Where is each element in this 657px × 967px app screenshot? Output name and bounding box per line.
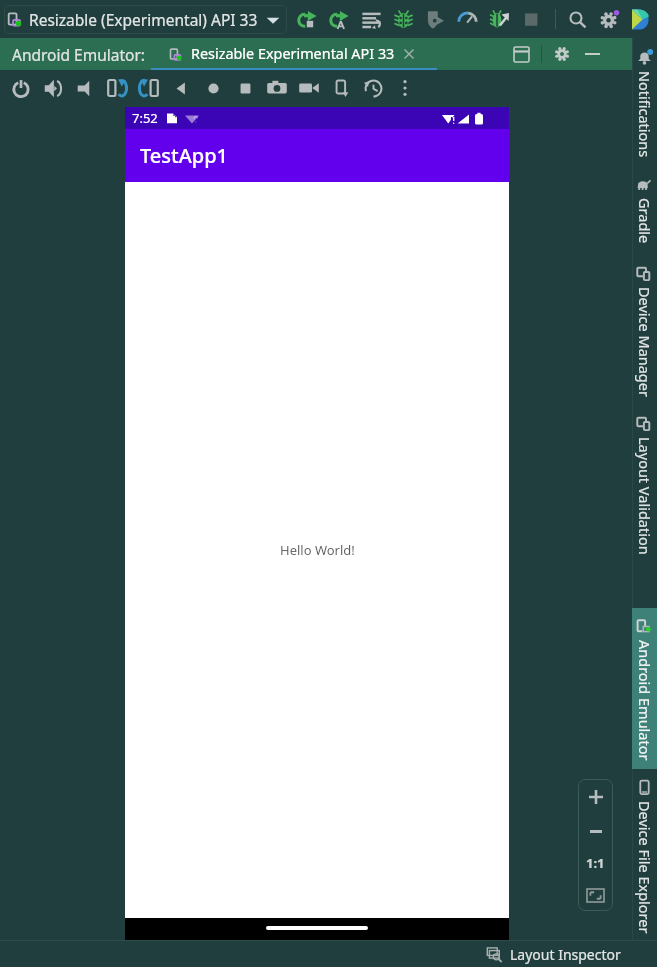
- button[interactable]: Stop: [515, 3, 547, 35]
- staticText: Android Emulator: [635, 640, 655, 761]
- button[interactable]: Zoom in: [578, 779, 613, 815]
- button[interactable]: Run: [291, 3, 323, 35]
- button[interactable]: Overview: [229, 71, 261, 105]
- button[interactable]: Run with arguments: [323, 3, 355, 35]
- button[interactable]: Rotate right: [133, 71, 165, 105]
- button[interactable]: Fit to screen: [578, 879, 613, 911]
- button[interactable]: Take screenshot: [261, 71, 293, 105]
- button[interactable]: Debug: [387, 3, 419, 35]
- staticText: 1:1: [586, 854, 605, 872]
- button[interactable]: Fold device: [325, 71, 357, 105]
- button[interactable]: Gemini: [625, 3, 657, 35]
- staticText: Device Manager: [635, 287, 655, 397]
- staticText: Gradle: [635, 198, 655, 244]
- button[interactable]: Record screen: [293, 71, 325, 105]
- button[interactable]: Back: [165, 71, 197, 105]
- button[interactable]: Android Emulator: [632, 619, 657, 761]
- button[interactable]: Layout Validation: [632, 416, 657, 555]
- staticText: TestApp1: [140, 142, 229, 169]
- button[interactable]: Volume up: [37, 71, 69, 105]
- button[interactable]: Run with profiler: [419, 3, 451, 35]
- button[interactable]: Home: [197, 71, 229, 105]
- staticText: Resizable Experimental API 33: [191, 44, 395, 64]
- button[interactable]: Device File Explorer: [632, 780, 657, 934]
- staticText: Layout Inspector: [510, 945, 621, 964]
- button[interactable]: Rotate left: [101, 71, 133, 105]
- button[interactable]: More: [389, 71, 421, 105]
- staticText: Layout Validation: [635, 437, 655, 555]
- staticText: Android Emulator:: [12, 44, 145, 65]
- staticText: Resizable (Experimental) API 33: [29, 9, 258, 30]
- button[interactable]: Search: [561, 3, 593, 35]
- button[interactable]: Settings: [593, 3, 625, 35]
- button[interactable]: Layout Inspector: [487, 945, 621, 964]
- button[interactable]: Zoom out: [578, 815, 613, 847]
- button[interactable]: Volume down: [69, 71, 101, 105]
- button[interactable]: Gradle: [632, 177, 657, 244]
- button[interactable]: Attach debugger: [483, 3, 515, 35]
- button[interactable]: Resizable (Experimental) API 33: [4, 5, 287, 34]
- button[interactable]: Device Manager: [632, 266, 657, 397]
- button[interactable]: Minimize: [577, 39, 607, 69]
- staticText: Hello World!: [280, 541, 355, 559]
- staticText: Notifications: [635, 71, 655, 158]
- button[interactable]: Logcat: [355, 3, 387, 35]
- button[interactable]: Back up and restore: [357, 71, 389, 105]
- button[interactable]: Settings: [547, 39, 577, 69]
- button[interactable]: Power: [5, 71, 37, 105]
- button[interactable]: Actual size: [578, 847, 613, 879]
- button[interactable]: Notifications: [632, 50, 657, 158]
- button[interactable]: Window options: [506, 39, 536, 69]
- staticText: 7:52: [132, 109, 158, 127]
- staticText: Device File Explorer: [635, 801, 655, 934]
- button[interactable]: Profiler: [451, 3, 483, 35]
- button[interactable]: Resizable Experimental API 33: [151, 38, 437, 70]
